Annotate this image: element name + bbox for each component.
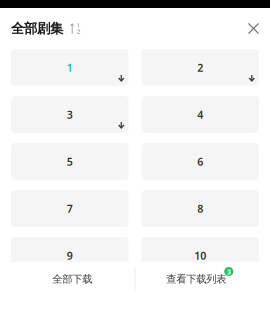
staticText: 1 [67, 60, 73, 75]
button[interactable]: 10 [141, 237, 259, 274]
button[interactable]: 查看下载列表 [135, 266, 270, 292]
button[interactable]: Close [243, 18, 264, 39]
staticText: 全部下载 [52, 272, 92, 285]
staticText: 10 [194, 248, 206, 263]
button[interactable]: 7 [11, 190, 128, 227]
button[interactable]: 6 [141, 143, 259, 180]
button[interactable]: 9 [11, 237, 128, 274]
button[interactable]: 全部下载 [0, 266, 134, 292]
button[interactable]: 8 [141, 190, 259, 227]
button[interactable]: 4 [141, 96, 259, 133]
staticText: 8 [197, 201, 203, 216]
staticText: 查看下载列表 [166, 272, 226, 285]
staticText: 7 [67, 201, 73, 216]
staticText: 3 [227, 266, 231, 277]
staticText: 4 [197, 107, 203, 122]
staticText: 2 [197, 60, 203, 75]
button[interactable]: Sort order [63, 18, 83, 39]
staticText: 3 [67, 107, 73, 122]
button[interactable]: 1 [11, 49, 128, 86]
staticText: 全部剧集 [11, 20, 63, 37]
button[interactable]: 2 [141, 49, 259, 86]
staticText: 6 [197, 154, 203, 169]
button[interactable]: 3 [11, 96, 128, 133]
staticText: 9 [67, 248, 73, 263]
staticText: 5 [67, 154, 73, 169]
button[interactable]: 5 [11, 143, 128, 180]
